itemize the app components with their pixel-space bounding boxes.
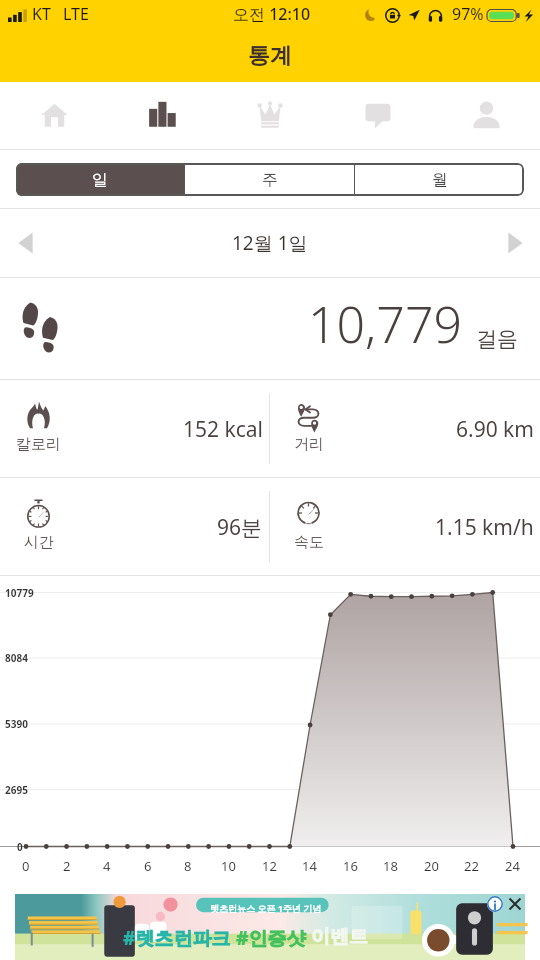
staticText: 10,779: [308, 290, 462, 358]
staticText: 렛츠런뉴스 오픈 1주년 기념: [210, 902, 322, 914]
staticText: 0: [22, 857, 30, 875]
staticText: LTE: [63, 3, 89, 25]
staticText: 97%: [452, 3, 484, 25]
staticText: KT: [32, 3, 51, 25]
button[interactable]: 칼로리: [0, 380, 269, 477]
staticText: 5390: [5, 717, 28, 731]
staticText: 속도: [294, 533, 324, 552]
staticText: 통계: [248, 42, 292, 70]
staticText: 10779: [5, 586, 34, 600]
staticText: 12월 1일: [232, 230, 308, 256]
staticText: 4: [103, 857, 111, 875]
staticText: 16: [343, 857, 358, 875]
staticText: 2695: [5, 783, 28, 797]
staticText: 24: [505, 857, 520, 875]
staticText: 1.15 km/h: [435, 513, 534, 542]
staticText: 8: [184, 857, 192, 875]
button[interactable]: 월: [355, 163, 524, 196]
staticText: 12: [262, 857, 277, 875]
staticText: 18: [383, 857, 398, 875]
staticText: 오전 12:10: [233, 3, 311, 25]
button[interactable]: 10,779: [0, 278, 540, 379]
button[interactable]: 속도: [270, 478, 540, 575]
staticText: 96분: [217, 513, 263, 542]
button[interactable]: 시간: [0, 478, 269, 575]
staticText: 152 kcal: [183, 415, 263, 444]
staticText: 2: [63, 857, 71, 875]
staticText: 칼로리: [16, 435, 61, 454]
staticText: 0: [17, 840, 23, 854]
button[interactable]: 거리: [270, 380, 540, 477]
button[interactable]: 주: [185, 163, 354, 196]
staticText: 이벤트: [311, 925, 368, 949]
staticText: 걸음: [476, 326, 518, 352]
button[interactable]: Statistics: [108, 82, 216, 149]
button[interactable]: Previous day: [0, 209, 50, 277]
staticText: 22: [464, 857, 479, 875]
button[interactable]: Messages: [324, 82, 432, 149]
button[interactable]: Advertisement: [15, 894, 525, 960]
staticText: 일: [92, 170, 108, 190]
button[interactable]: Profile: [432, 82, 540, 149]
staticText: 6.90 km: [456, 415, 534, 444]
staticText: 월: [432, 170, 448, 190]
button[interactable]: Next day: [490, 209, 540, 277]
staticText: 거리: [294, 435, 324, 454]
button[interactable]: Ranking: [216, 82, 324, 149]
staticText: 10: [221, 857, 236, 875]
button[interactable]: 일: [16, 163, 184, 196]
staticText: 20: [424, 857, 439, 875]
staticText: 14: [302, 857, 317, 875]
staticText: 8084: [5, 651, 28, 665]
staticText: 6: [144, 857, 152, 875]
staticText: 주: [262, 170, 278, 190]
staticText: #인증샷: [236, 925, 311, 951]
button[interactable]: Home: [0, 82, 108, 149]
staticText: #렛츠런파크: [123, 925, 236, 951]
staticText: 시간: [24, 533, 54, 552]
